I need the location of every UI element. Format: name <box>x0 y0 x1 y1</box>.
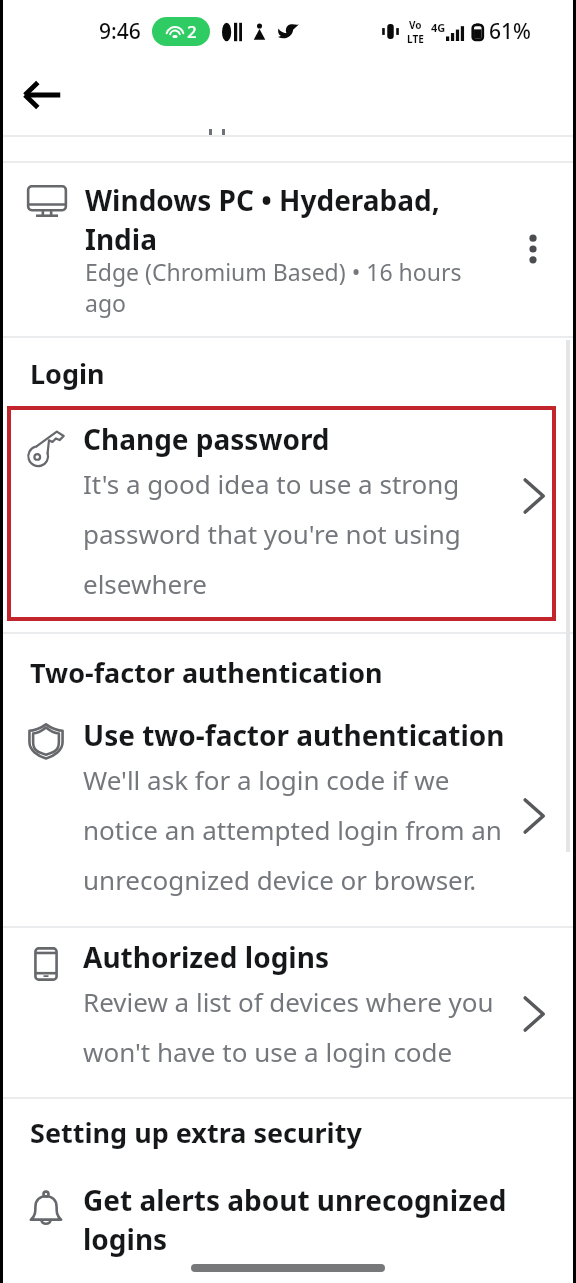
staticText: Windows PC • Hyderabad, India <box>85 181 475 258</box>
staticText: Vo <box>409 18 422 32</box>
button[interactable]: Get alerts about unrecognized logins <box>3 1167 573 1268</box>
staticText: Change password <box>83 420 330 458</box>
staticText: Review a list of devices where you won't… <box>83 984 507 1070</box>
staticText: We'll ask for a login code if we notice … <box>83 762 507 898</box>
staticText: Setting up extra security <box>30 1114 362 1151</box>
staticText: Get alerts about unrecognized logins <box>83 1181 507 1258</box>
button[interactable]: Use two-factor authentication <box>3 699 573 926</box>
staticText: Edge (Chromium Based) • 16 hours ago <box>85 256 475 319</box>
button[interactable]: Change password <box>3 403 573 632</box>
staticText: 61% <box>489 17 531 46</box>
staticText: Two-factor authentication <box>30 654 383 691</box>
staticText: 4G <box>431 20 446 35</box>
button[interactable]: Windows PC • Hyderabad, India <box>3 163 573 336</box>
staticText: Login <box>30 355 105 392</box>
staticText: LTE <box>407 32 424 46</box>
staticText: 9:46 <box>99 17 141 46</box>
button[interactable]: More options <box>511 227 555 271</box>
staticText: It's a good idea to use a strong passwor… <box>83 466 507 602</box>
staticText: Use two-factor authentication <box>83 716 505 754</box>
staticText: Authorized logins <box>83 938 329 976</box>
button[interactable]: Authorized logins <box>3 928 573 1097</box>
staticText: 2 <box>187 20 197 43</box>
button[interactable]: Back <box>13 66 71 124</box>
